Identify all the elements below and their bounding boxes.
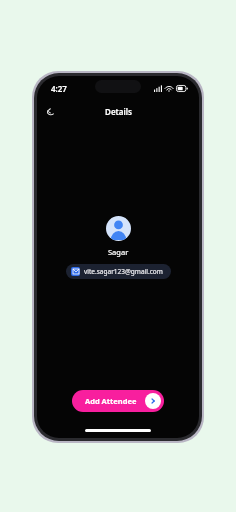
- staticText: 4:27: [51, 83, 67, 94]
- staticText: Details: [105, 106, 132, 117]
- staticText: Sagar: [108, 247, 129, 257]
- button[interactable]: vite.sagar123@gmail.com: [66, 264, 171, 279]
- button[interactable]: Add Attendee: [72, 390, 164, 412]
- staticText: vite.sagar123@gmail.com: [84, 267, 163, 276]
- staticText: Add Attendee: [85, 396, 137, 406]
- button[interactable]: Back: [42, 102, 60, 120]
